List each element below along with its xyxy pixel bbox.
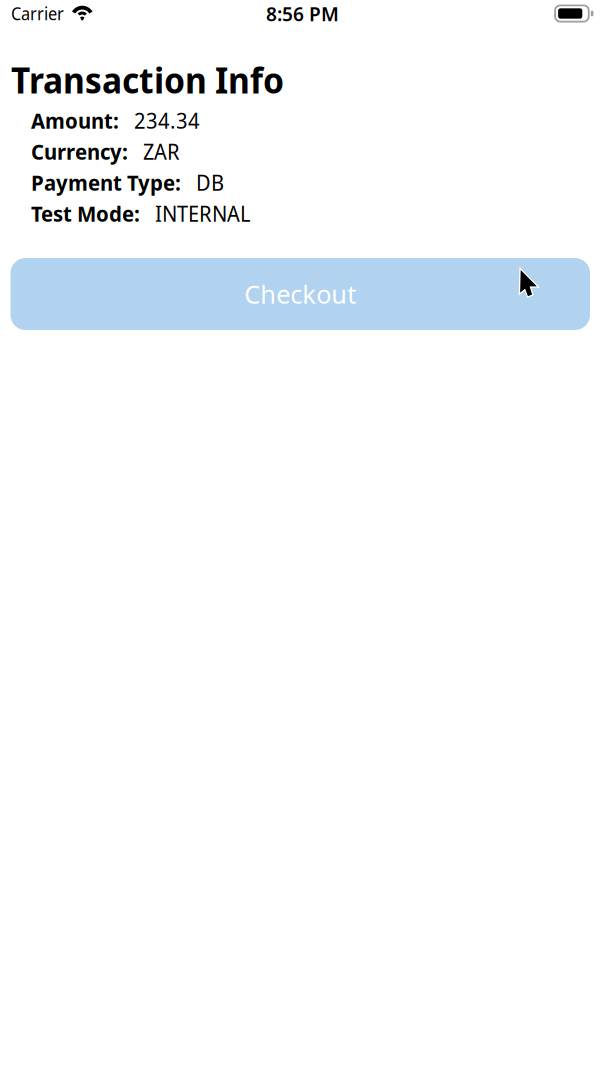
staticText: Test Mode:: [31, 199, 140, 228]
button[interactable]: Checkout: [10, 258, 590, 330]
staticText: Amount:: [31, 106, 119, 135]
staticText: 234.34: [134, 106, 200, 135]
staticText: 8:56 PM: [266, 0, 339, 27]
staticText: ZAR: [143, 137, 180, 166]
staticText: DB: [196, 168, 224, 197]
staticText: INTERNAL: [155, 199, 251, 228]
staticText: Checkout: [244, 277, 356, 311]
staticText: Payment Type:: [31, 168, 181, 197]
staticText: Currency:: [31, 137, 128, 166]
staticText: Transaction Info: [11, 55, 284, 104]
staticText: Carrier: [11, 2, 64, 25]
